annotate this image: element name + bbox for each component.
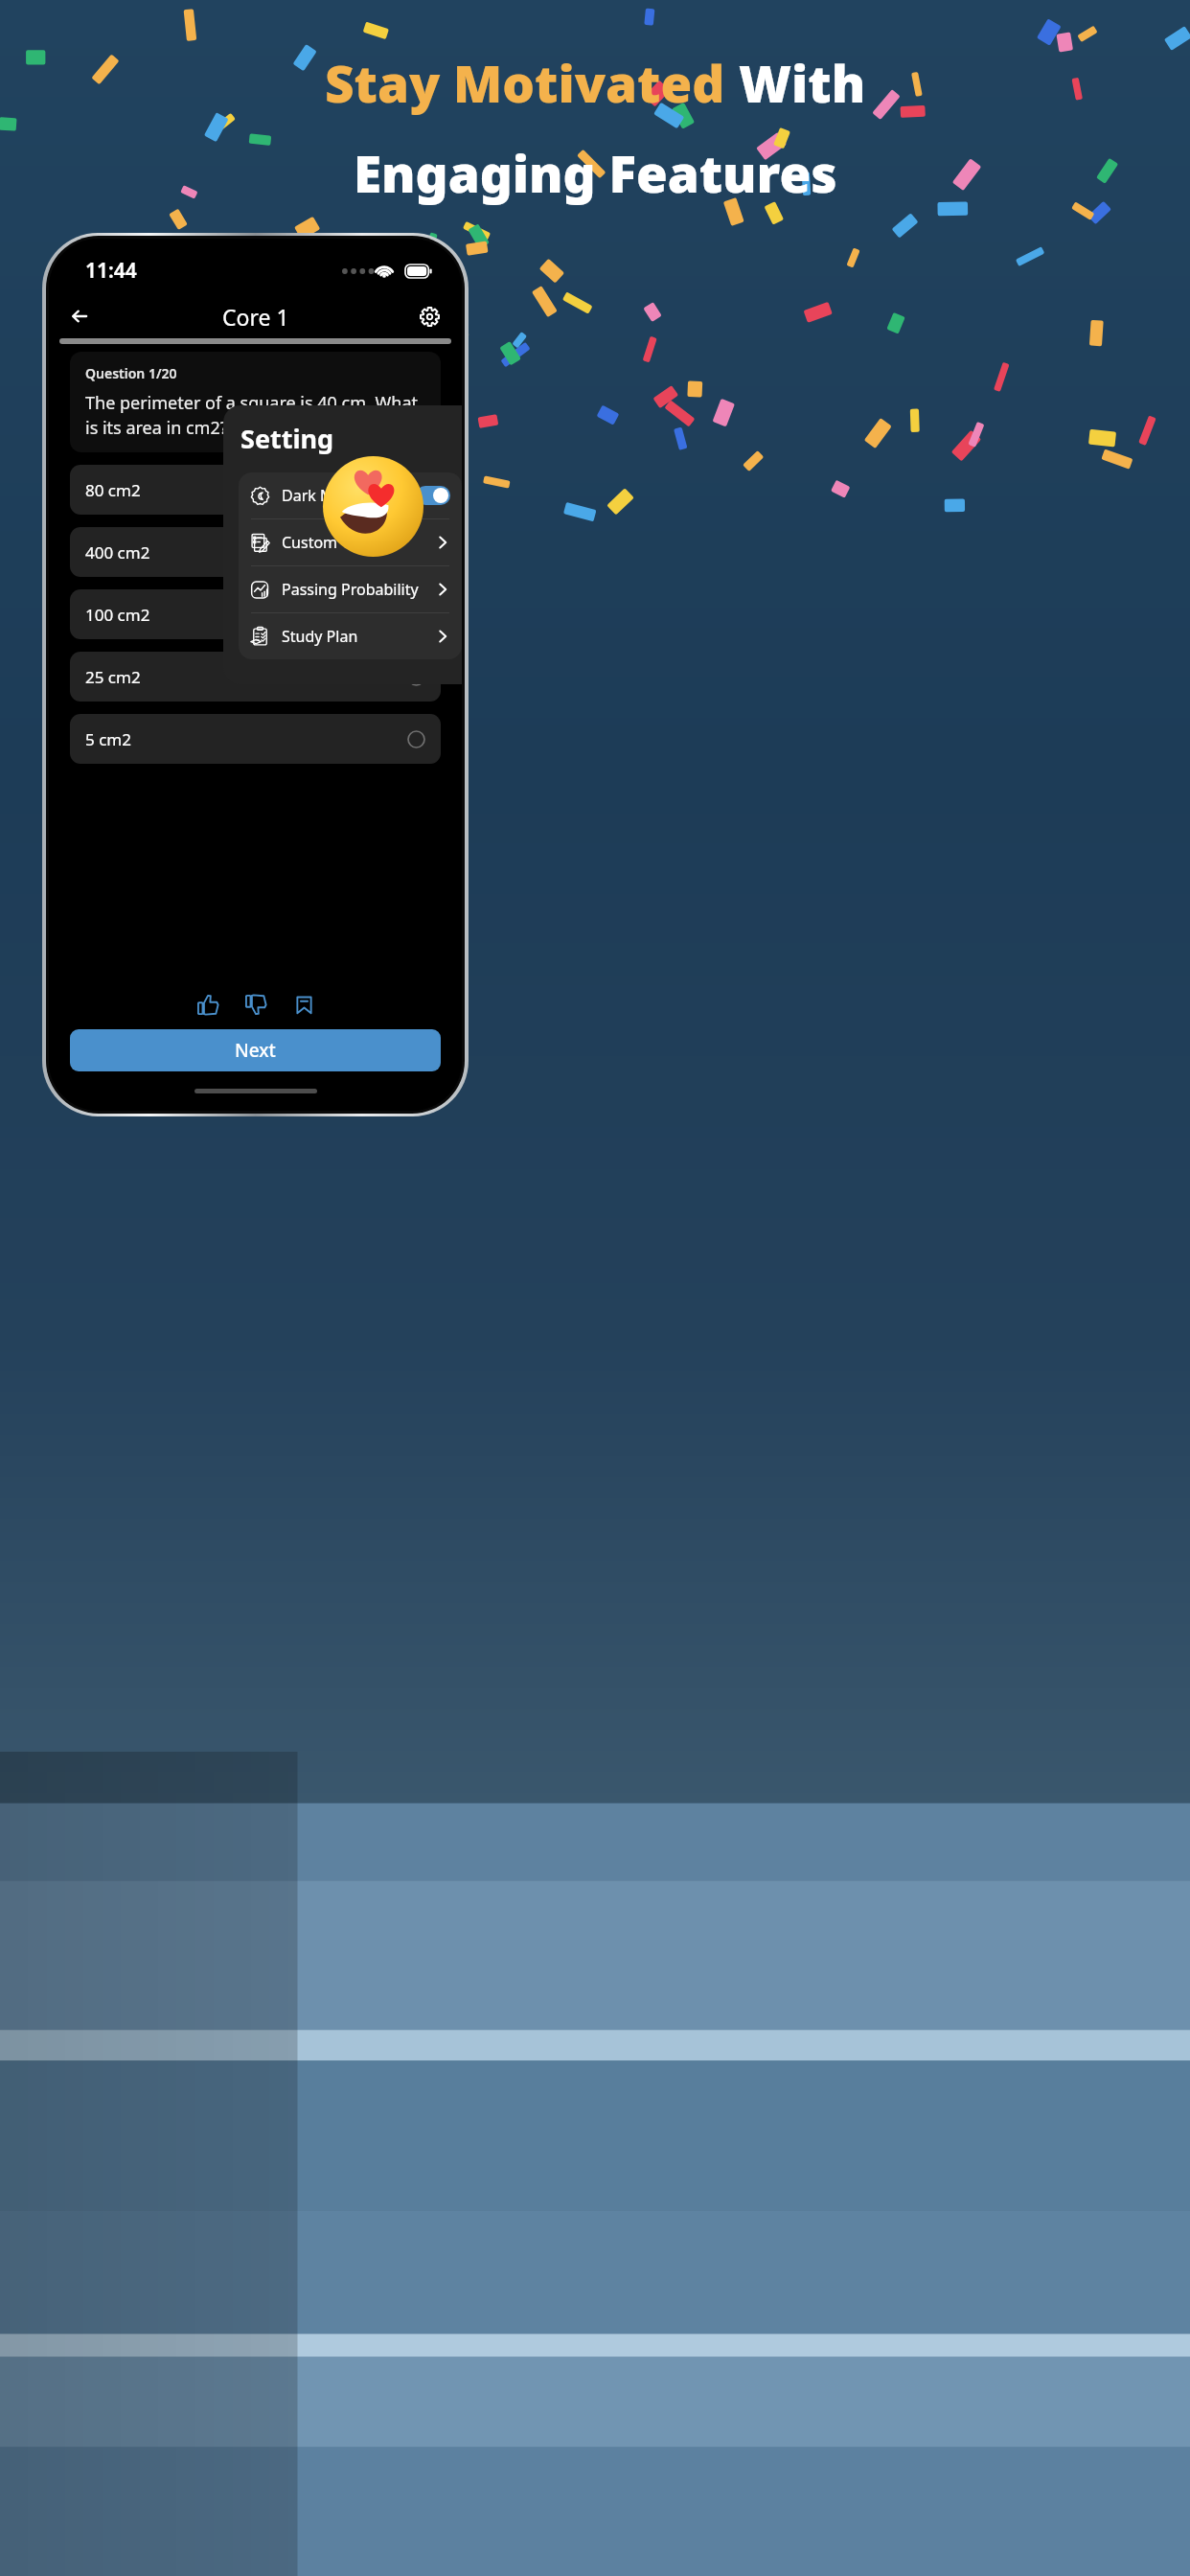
button[interactable]: Next <box>70 1029 441 1071</box>
staticText: 400 cm2 <box>85 541 407 563</box>
staticText: Core 1 <box>222 302 289 332</box>
button[interactable]: 5 cm2 <box>70 714 441 764</box>
staticText: Custom Test <box>282 532 435 553</box>
button[interactable]: Custom Test <box>250 519 450 565</box>
staticText: Question 1/20 <box>85 364 177 382</box>
staticText: 25 cm2 <box>85 666 407 688</box>
staticText: 5 cm2 <box>85 728 407 750</box>
staticText: Stay Motivated <box>325 48 739 117</box>
button[interactable]: 400 cm2 <box>70 527 441 577</box>
staticText: With <box>739 48 866 117</box>
button[interactable] <box>416 486 450 505</box>
button[interactable]: Bookmark <box>285 985 323 1023</box>
button[interactable]: Like <box>189 985 227 1023</box>
staticText: The perimeter of a square is 40 cm. What… <box>85 391 425 440</box>
button[interactable]: Question 1/20 <box>70 352 441 452</box>
staticText: Dark Mode <box>282 485 416 506</box>
staticText: 80 cm2 <box>85 479 407 501</box>
staticText: Study Plan <box>282 626 435 647</box>
staticText: Engaging Features <box>354 138 837 207</box>
button[interactable]: Passing Probability <box>250 566 450 612</box>
button[interactable]: Back <box>60 296 101 336</box>
button[interactable]: Study Plan <box>250 613 450 659</box>
button[interactable]: Settings <box>410 297 448 335</box>
staticText: 11:44 <box>85 257 137 285</box>
staticText: Passing Probability <box>282 579 435 600</box>
button[interactable]: Dislike <box>237 985 275 1023</box>
button[interactable]: 25 cm2 <box>70 652 441 701</box>
staticText: Next <box>235 1038 276 1063</box>
button[interactable]: 100 cm2 <box>70 589 441 639</box>
staticText: 100 cm2 <box>85 604 407 626</box>
button[interactable]: Dark Mode <box>250 472 450 518</box>
button[interactable]: 80 cm2 <box>70 465 441 515</box>
staticText: Setting <box>240 421 334 456</box>
